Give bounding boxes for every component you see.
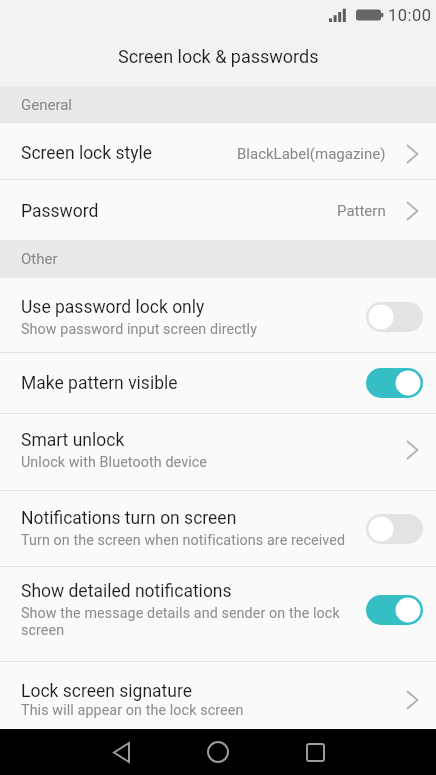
button[interactable]: Use password lock only: [0, 278, 436, 352]
staticText: Screen lock style: [21, 143, 153, 164]
button[interactable]: [298, 734, 332, 770]
staticText: General: [21, 96, 73, 114]
button[interactable]: Show detailed notifications: [0, 567, 436, 661]
button[interactable]: [104, 734, 138, 770]
staticText: Use password lock only: [21, 297, 205, 318]
button[interactable]: [201, 734, 235, 770]
button[interactable]: Lock screen signature: [0, 662, 436, 729]
button[interactable]: Smart unlock: [0, 414, 436, 490]
staticText: Show password input screen directly: [21, 321, 258, 338]
staticText: 10:00: [388, 6, 432, 25]
button[interactable]: Make pattern visible: [0, 353, 436, 413]
staticText: Unlock with Bluetooth device: [21, 454, 207, 471]
staticText: Turn on the screen when notifications ar…: [21, 532, 346, 549]
staticText: BlackLabel(magazine): [237, 145, 386, 163]
button[interactable]: Screen lock style: [0, 123, 436, 179]
staticText: Password: [21, 201, 99, 222]
staticText: Lock screen signature: [21, 681, 193, 702]
button[interactable]: Notifications turn on screen: [0, 491, 436, 566]
button[interactable]: Password: [0, 180, 436, 240]
staticText: Notifications turn on screen: [21, 508, 237, 529]
staticText: Show the message details and sender on t…: [21, 605, 356, 639]
staticText: Smart unlock: [21, 430, 125, 451]
staticText: Screen lock & passwords: [118, 46, 319, 67]
staticText: Show detailed notifications: [21, 581, 232, 602]
staticText: Pattern: [337, 202, 386, 220]
staticText: Other: [21, 250, 58, 268]
staticText: Make pattern visible: [21, 373, 178, 394]
staticText: This will appear on the lock screen: [21, 702, 244, 719]
